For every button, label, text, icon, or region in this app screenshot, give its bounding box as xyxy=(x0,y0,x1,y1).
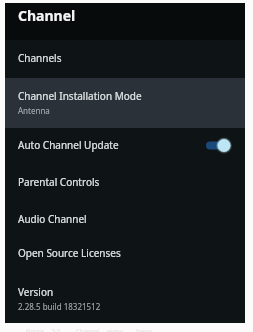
staticText: Audio Channel xyxy=(18,212,87,226)
staticText: Channel xyxy=(18,6,76,25)
staticText: Figure 3-5. Channel menu items xyxy=(26,327,152,332)
button[interactable]: Channels xyxy=(5,40,245,78)
button[interactable]: Audio Channel xyxy=(5,202,245,237)
button[interactable]: Parental Controls xyxy=(5,163,245,202)
button[interactable]: Auto Channel Update xyxy=(5,128,245,163)
staticText: Parental Controls xyxy=(18,175,100,189)
staticText: Open Source Licenses xyxy=(18,246,121,260)
staticText: Antenna xyxy=(18,105,50,116)
staticText: Channel Installation Mode xyxy=(18,89,142,103)
staticText: Version xyxy=(18,285,54,299)
button[interactable]: Open Source Licenses xyxy=(5,237,245,274)
button[interactable]: Auto Channel Update switch, on xyxy=(206,137,231,154)
staticText: 2.28.5 build 18321512 xyxy=(18,301,101,312)
button[interactable]: Channel xyxy=(5,3,245,40)
button[interactable]: Version xyxy=(5,274,245,323)
staticText: Auto Channel Update xyxy=(18,138,119,152)
button[interactable]: Channel Installation Mode xyxy=(5,78,245,128)
staticText: Channels xyxy=(18,51,62,65)
